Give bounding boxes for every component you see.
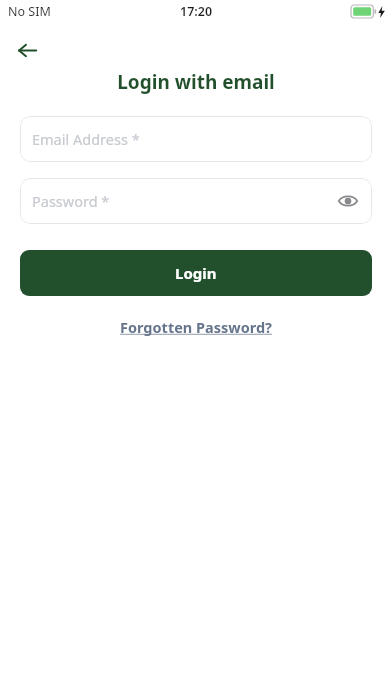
button[interactable]: Login — [20, 250, 372, 296]
button[interactable]: Forgotten Password? — [116, 314, 277, 340]
staticText: Password * — [32, 191, 110, 211]
staticText: Login — [175, 263, 217, 283]
button[interactable]: Show password — [332, 185, 364, 217]
button[interactable]: Password * — [20, 178, 372, 224]
staticText: 17:20 — [180, 3, 213, 20]
staticText: Forgotten Password? — [120, 317, 273, 337]
button[interactable]: Email Address * — [20, 116, 372, 162]
button[interactable]: Back — [10, 33, 44, 67]
staticText: No SIM — [8, 3, 51, 20]
staticText: Email Address * — [32, 129, 140, 149]
staticText: Login with email — [0, 69, 392, 95]
